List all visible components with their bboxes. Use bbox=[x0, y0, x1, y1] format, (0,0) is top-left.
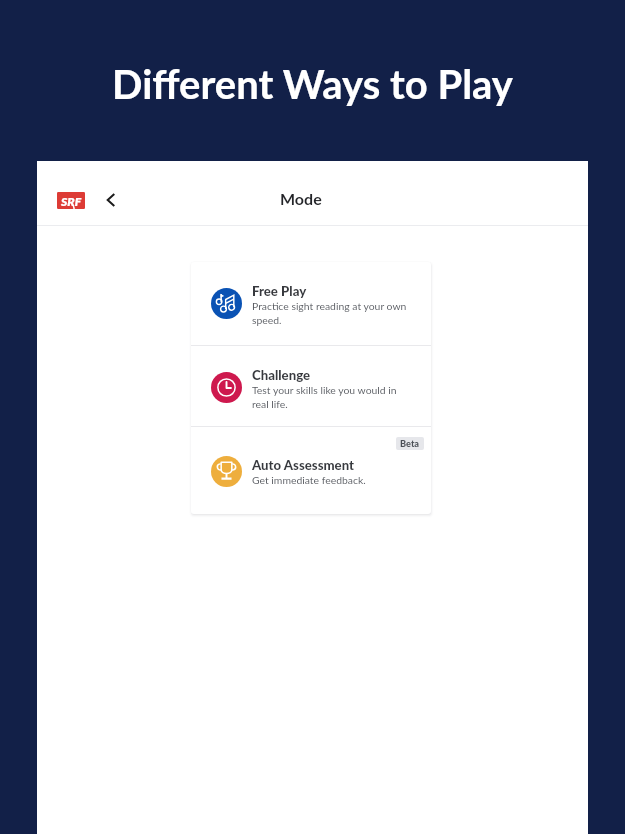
staticText: Get immediate feedback. bbox=[252, 474, 366, 486]
button[interactable]: SRF bbox=[52, 187, 90, 213]
staticText: Mode bbox=[280, 189, 322, 208]
staticText: Practice sight reading at your own speed… bbox=[252, 300, 408, 326]
button[interactable]: Back bbox=[97, 186, 125, 214]
staticText: Challenge bbox=[252, 367, 311, 383]
button[interactable]: Beta bbox=[191, 427, 431, 514]
button[interactable]: Challenge bbox=[191, 346, 431, 426]
staticText: Beta bbox=[400, 438, 420, 449]
staticText: SRF bbox=[61, 194, 82, 208]
staticText: Free Play bbox=[252, 283, 307, 299]
button[interactable]: Free Play bbox=[191, 262, 431, 345]
staticText: Different Ways to Play bbox=[0, 60, 625, 108]
staticText: Auto Assessment bbox=[252, 457, 355, 473]
staticText: Test your skills like you would in real … bbox=[252, 384, 408, 410]
